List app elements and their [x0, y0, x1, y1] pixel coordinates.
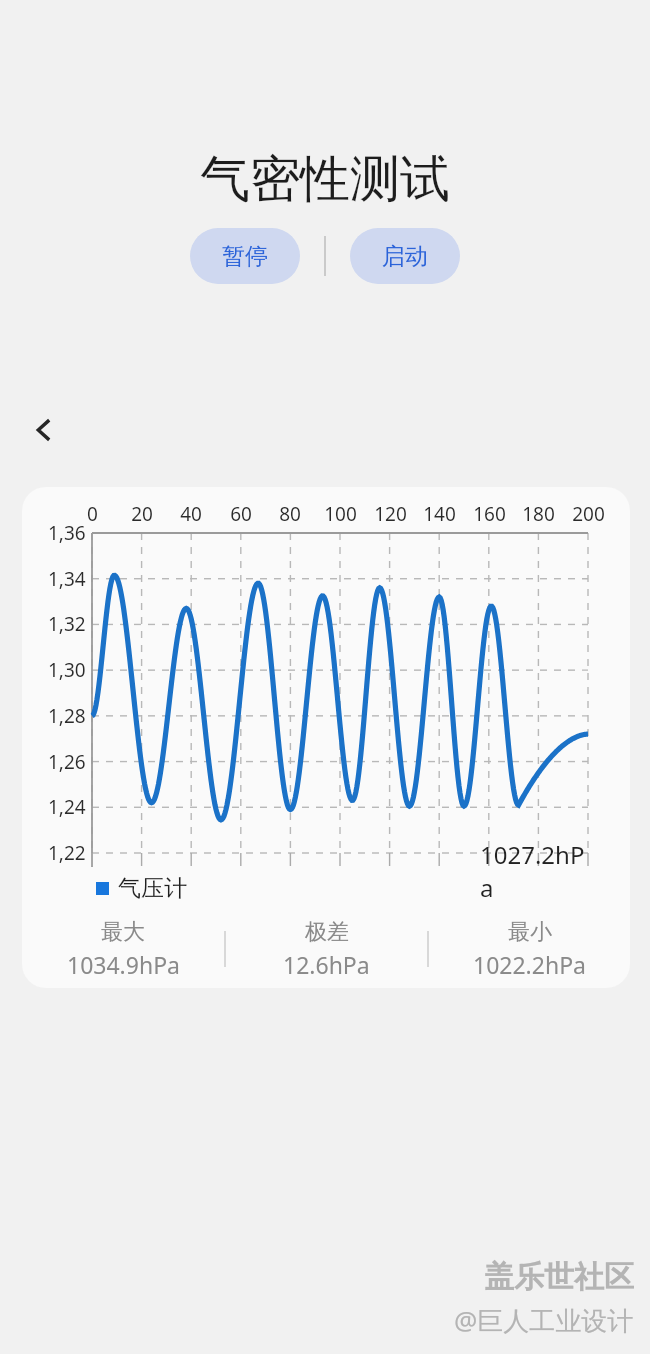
staticText: 1022.2hPa [473, 949, 586, 980]
staticText: 1,28 [48, 703, 86, 729]
button[interactable]: 最大 [22, 918, 224, 980]
staticText: 1,32 [48, 611, 86, 637]
staticText: 1034.9hPa [67, 949, 180, 980]
staticText: 140 [423, 501, 456, 527]
button[interactable]: 0 [22, 487, 630, 988]
staticText: 1,22 [48, 840, 86, 866]
button[interactable]: 最小 [429, 918, 630, 980]
staticText: 气压计 [118, 874, 187, 903]
staticText: 气密性测试 [0, 148, 650, 211]
staticText: 1,30 [48, 657, 86, 683]
staticText: 最大 [101, 918, 145, 946]
staticText: 180 [522, 501, 555, 527]
staticText: 1027.2hPa [480, 838, 590, 904]
staticText: 暂停 [222, 242, 268, 271]
staticText: 1,36 [48, 520, 86, 546]
staticText: 40 [180, 501, 202, 527]
staticText: 20 [131, 501, 153, 527]
staticText: 100 [324, 501, 357, 527]
staticText: 盖乐世社区 [484, 1258, 634, 1296]
staticText: 80 [279, 501, 301, 527]
staticText: 1,26 [48, 749, 86, 775]
staticText: 1,34 [48, 566, 86, 592]
button[interactable]: 暂停 [190, 228, 300, 284]
button[interactable]: Back [18, 404, 70, 456]
staticText: 200 [572, 501, 605, 527]
staticText: 1,24 [48, 794, 86, 820]
staticText: 0 [87, 501, 98, 527]
staticText: 最小 [508, 918, 552, 946]
staticText: 极差 [305, 918, 349, 946]
button[interactable]: 极差 [226, 918, 427, 980]
staticText: @巨人工业设计 [454, 1302, 634, 1338]
staticText: 160 [473, 501, 506, 527]
staticText: 120 [374, 501, 407, 527]
staticText: 60 [230, 501, 252, 527]
staticText: 启动 [382, 242, 428, 271]
staticText: 12.6hPa [283, 949, 370, 980]
button[interactable]: 启动 [350, 228, 460, 284]
